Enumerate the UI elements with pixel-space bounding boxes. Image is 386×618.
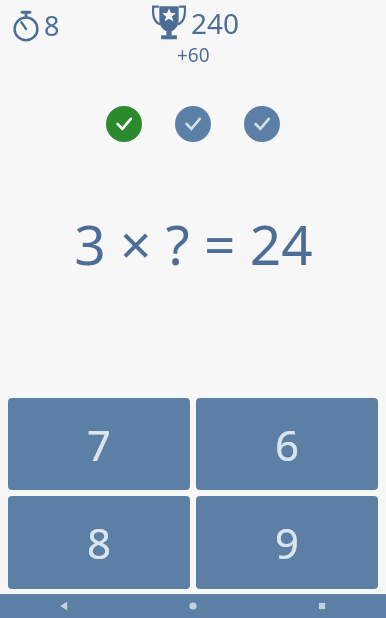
button[interactable]: 6 bbox=[196, 398, 378, 490]
button[interactable]: 9 bbox=[196, 496, 378, 589]
button[interactable]: Answer correct bbox=[175, 106, 211, 142]
staticText: 9 bbox=[275, 514, 300, 571]
button[interactable]: Score bbox=[147, 1, 240, 71]
other: Timer bbox=[9, 9, 43, 43]
staticText: 6 bbox=[275, 416, 300, 473]
staticText: 8 bbox=[44, 7, 60, 44]
button[interactable]: Recents bbox=[257, 594, 386, 618]
button[interactable]: 8 bbox=[8, 496, 190, 589]
button[interactable]: Answer correct bbox=[106, 106, 142, 142]
staticText: +60 bbox=[177, 42, 210, 68]
other: Score bbox=[147, 1, 191, 45]
staticText: 3 × ? = 24 bbox=[74, 206, 313, 281]
staticText: 8 bbox=[87, 514, 112, 571]
staticText: 7 bbox=[87, 416, 112, 473]
button[interactable]: Answer correct bbox=[244, 106, 280, 142]
button[interactable]: 7 bbox=[8, 398, 190, 490]
staticText: 240 bbox=[191, 4, 240, 42]
button[interactable]: Back bbox=[0, 594, 128, 618]
button[interactable]: Timer bbox=[6, 5, 63, 46]
button[interactable]: Home bbox=[128, 594, 257, 618]
